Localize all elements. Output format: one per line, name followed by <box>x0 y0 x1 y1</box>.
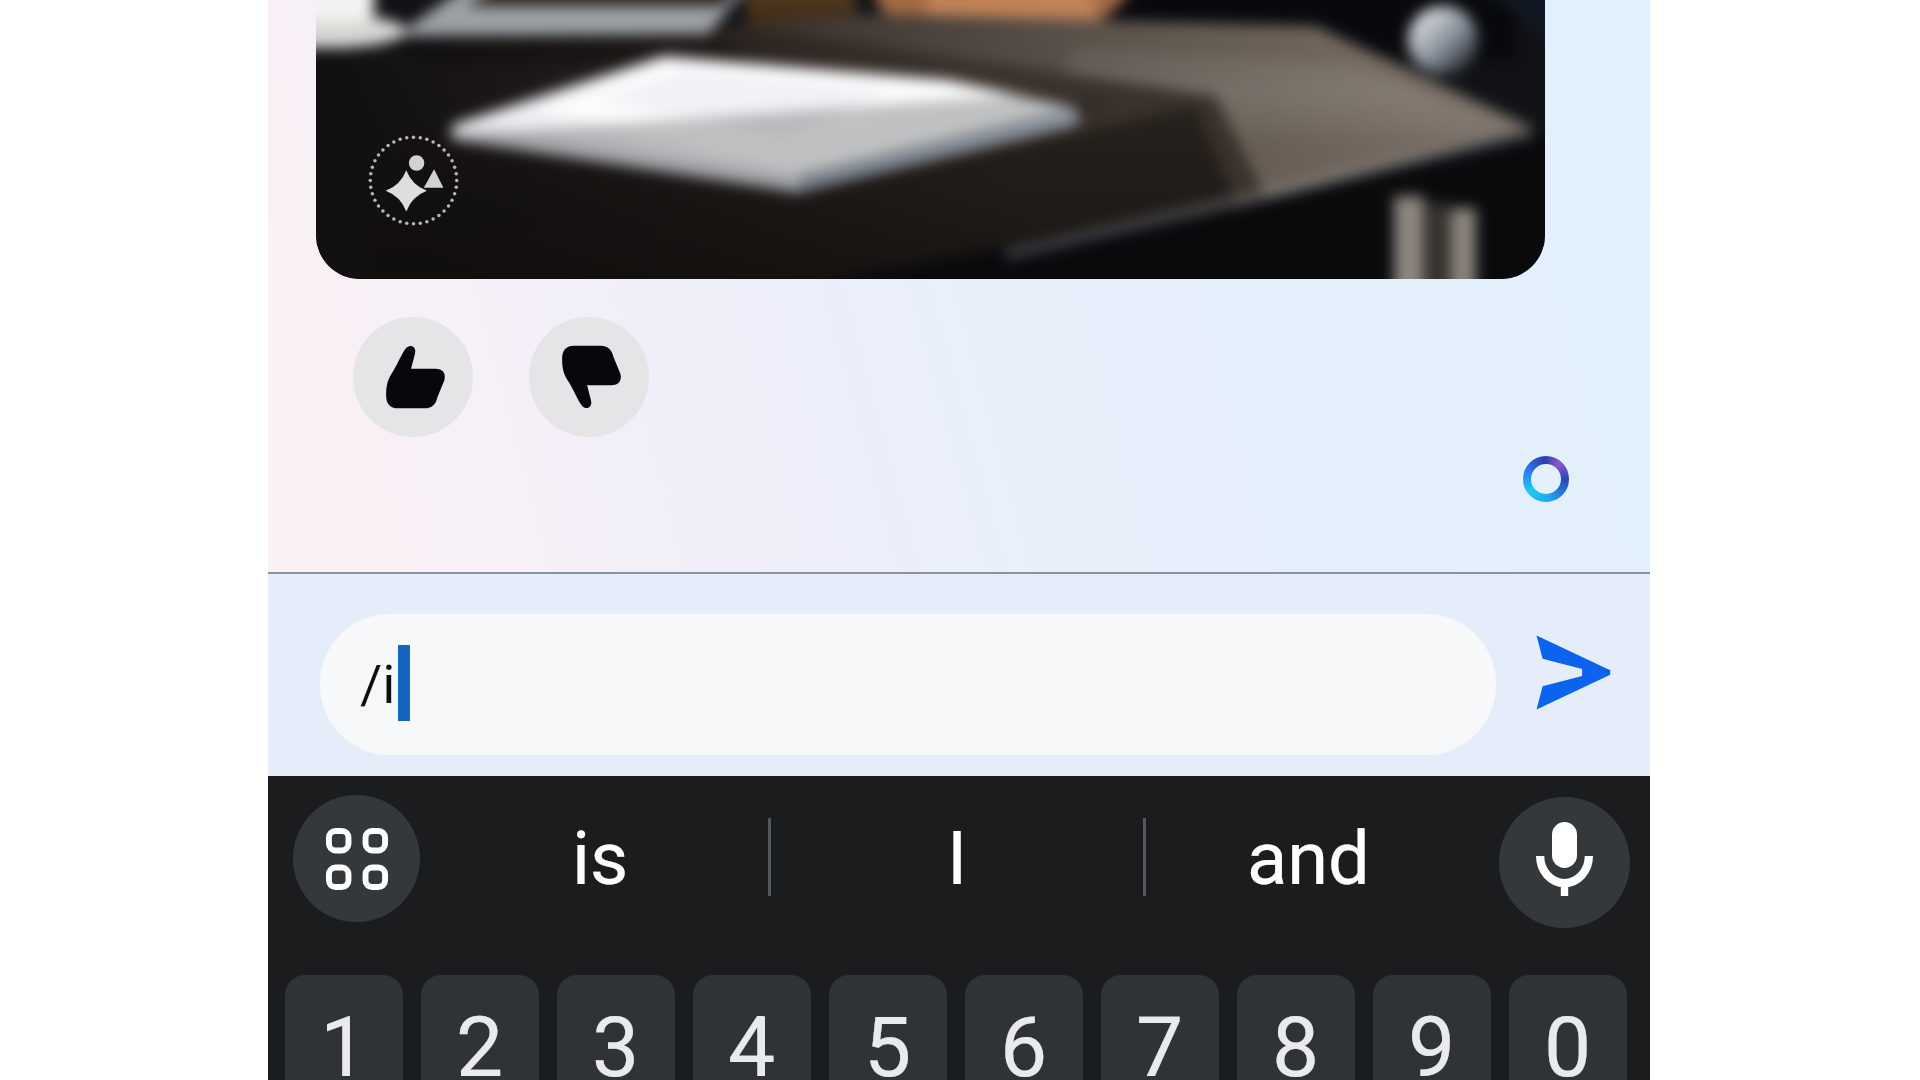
button[interactable]: 7 <box>1101 975 1219 1080</box>
staticText: 3 <box>592 998 640 1080</box>
button[interactable]: Send <box>1527 626 1619 719</box>
staticText: 8 <box>1272 998 1320 1080</box>
staticText: 9 <box>1408 998 1456 1080</box>
button[interactable]: 2 <box>421 975 539 1080</box>
button[interactable]: 8 <box>1237 975 1355 1080</box>
button[interactable]: 4 <box>693 975 811 1080</box>
button[interactable]: and <box>1146 776 1471 940</box>
staticText: 0 <box>1544 998 1592 1080</box>
button[interactable]: Switch keyboard <box>293 795 420 922</box>
other: Generating response <box>1509 442 1583 516</box>
button[interactable]: 9 <box>1373 975 1491 1080</box>
button[interactable]: 6 <box>965 975 1083 1080</box>
staticText: 7 <box>1136 998 1184 1080</box>
staticText: 6 <box>1000 998 1048 1080</box>
staticText: is <box>572 815 629 902</box>
staticText: 4 <box>728 998 776 1080</box>
staticText: 1 <box>320 998 368 1080</box>
button[interactable]: I <box>771 776 1144 940</box>
button[interactable]: Good response <box>353 317 473 437</box>
button[interactable]: 1 <box>285 975 403 1080</box>
button[interactable]: 0 <box>1509 975 1627 1080</box>
button[interactable]: Bad response <box>529 317 649 437</box>
staticText: 2 <box>456 998 504 1080</box>
staticText: 5 <box>864 998 912 1080</box>
button[interactable]: 5 <box>829 975 947 1080</box>
button[interactable]: /i <box>320 614 1496 755</box>
button[interactable]: Voice input <box>1499 797 1630 928</box>
button[interactable]: is <box>441 776 760 940</box>
button[interactable]: 3 <box>557 975 675 1080</box>
staticText: I <box>947 815 968 902</box>
staticText: /i <box>360 653 396 716</box>
staticText: and <box>1247 815 1370 902</box>
